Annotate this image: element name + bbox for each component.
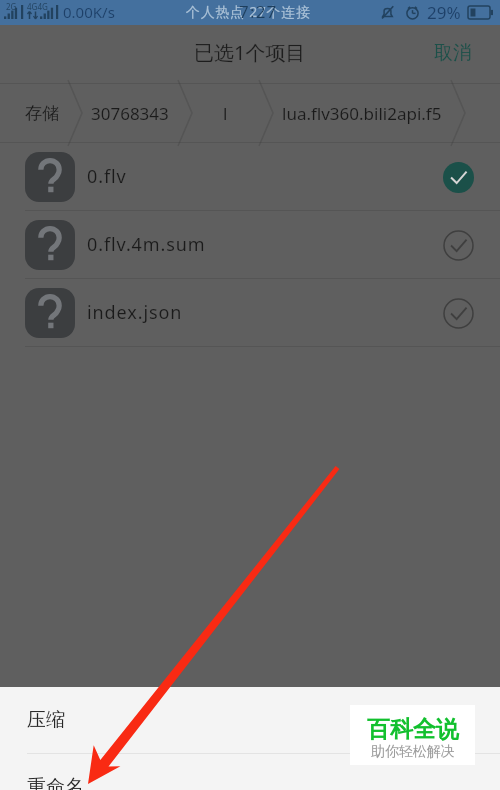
- staticText: 百科全说: [367, 715, 459, 744]
- button[interactable]: 0.flv.4m.sum: [0, 211, 500, 279]
- other: Alarm: [404, 4, 421, 21]
- button[interactable]: Select item: [436, 155, 480, 199]
- button[interactable]: index.json: [0, 279, 500, 347]
- button[interactable]: 压缩: [0, 687, 500, 753]
- other: Battery: [468, 6, 493, 19]
- staticText: 29%: [427, 1, 461, 24]
- staticText: 0.flv.4m.sum: [87, 232, 206, 257]
- button[interactable]: 30768343: [83, 90, 177, 137]
- staticText: 0.00K/s: [63, 2, 115, 22]
- button[interactable]: 取消: [406, 31, 500, 75]
- staticText: lua.flv360.bili2api.f5: [282, 102, 442, 125]
- staticText: 取消: [434, 41, 472, 65]
- staticText: 助你轻松解决: [371, 743, 455, 761]
- staticText: 已选1个项目: [194, 39, 306, 66]
- button[interactable]: Select item: [436, 223, 480, 267]
- other: Silent: [379, 4, 396, 21]
- button[interactable]: l: [193, 90, 258, 137]
- staticText: 0.flv: [87, 164, 127, 189]
- staticText: 重命名: [27, 775, 84, 790]
- button[interactable]: 存储: [17, 91, 67, 136]
- staticText: 存储: [25, 103, 59, 124]
- staticText: 个人热点 27个连接: [186, 2, 311, 21]
- staticText: l: [223, 102, 228, 125]
- staticText: 7:27: [239, 0, 278, 23]
- staticText: 2G: [6, 1, 17, 12]
- staticText: 30768343: [91, 102, 169, 125]
- button[interactable]: Select item: [436, 291, 480, 335]
- button[interactable]: lua.flv360.bili2api.f5: [274, 90, 450, 137]
- staticText: 压缩: [27, 708, 65, 732]
- staticText: index.json: [87, 300, 183, 325]
- button[interactable]: 重命名: [0, 754, 500, 790]
- staticText: 4G4G: [27, 1, 48, 12]
- button[interactable]: 0.flv: [0, 143, 500, 211]
